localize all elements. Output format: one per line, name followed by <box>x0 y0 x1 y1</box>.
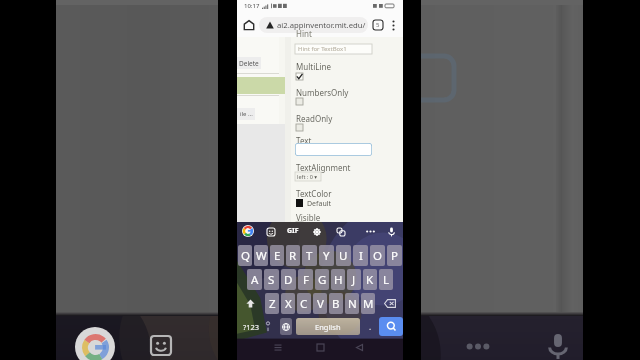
button[interactable]: Backspace <box>376 293 403 314</box>
button[interactable]: F <box>298 269 313 290</box>
staticText: left : 0 ▾ <box>297 173 318 180</box>
staticText: V <box>317 296 324 312</box>
button[interactable]: Home <box>314 341 326 353</box>
button[interactable]: D <box>281 269 296 290</box>
button[interactable]: Delete <box>237 57 261 69</box>
button[interactable]: H <box>331 269 345 290</box>
staticText: TextColor <box>296 188 332 199</box>
button[interactable]: Checkbox <box>296 124 303 131</box>
staticText: Delete <box>239 59 259 68</box>
button[interactable]: P <box>387 245 402 266</box>
staticText: Hint for TextBox1 <box>298 45 347 53</box>
button[interactable]: S <box>264 269 279 290</box>
staticText: ?123 <box>243 322 260 332</box>
staticText: T <box>306 248 313 264</box>
button[interactable]: Z <box>265 293 279 314</box>
staticText: MultiLine <box>296 61 331 72</box>
staticText: GIF <box>287 226 299 236</box>
button[interactable]: Back <box>353 341 365 353</box>
staticText: Z <box>269 296 276 312</box>
staticText: I <box>359 248 363 264</box>
staticText: M <box>363 296 374 312</box>
button[interactable]: Home <box>241 17 257 33</box>
staticText: A <box>251 272 259 288</box>
staticText: . <box>369 321 372 332</box>
staticText: P <box>391 248 398 264</box>
staticText: R <box>289 248 297 264</box>
button[interactable]: E <box>270 245 284 266</box>
button[interactable]: More options <box>386 18 400 32</box>
button[interactable]: Stickers <box>265 226 276 237</box>
button[interactable]: B <box>329 293 343 314</box>
staticText: S <box>268 272 275 288</box>
staticText: W <box>256 248 267 264</box>
button[interactable]: Google <box>242 225 254 237</box>
staticText: Text <box>296 135 312 146</box>
button[interactable]: X <box>281 293 295 314</box>
button[interactable]: Checkbox <box>296 73 303 80</box>
staticText: F <box>303 272 309 288</box>
button[interactable]: K <box>363 269 377 290</box>
staticText: TextAlignment <box>296 162 351 173</box>
button[interactable]: Y <box>319 245 334 266</box>
button[interactable]: left : 0 ▾ <box>295 172 321 181</box>
staticText: ile ... <box>240 110 253 118</box>
staticText: ai2.appinventor.mit.edu/ <box>277 20 366 30</box>
staticText: G <box>318 272 327 288</box>
button[interactable]: Tabs <box>371 18 385 32</box>
staticText: C <box>300 296 308 312</box>
button[interactable]: Settings <box>311 226 322 237</box>
button[interactable]: Q <box>238 245 252 266</box>
button[interactable]: J <box>347 269 361 290</box>
staticText: E <box>274 248 281 264</box>
button[interactable]: Recents <box>272 341 284 353</box>
button[interactable]: T <box>302 245 317 266</box>
button[interactable]: L <box>379 269 393 290</box>
staticText: NumbersOnly <box>296 87 349 98</box>
staticText: Default <box>307 199 332 209</box>
staticText: U <box>339 248 348 264</box>
button[interactable]: C <box>297 293 311 314</box>
button[interactable]: W <box>254 245 268 266</box>
button[interactable]: U <box>336 245 351 266</box>
staticText: 10:17 <box>244 2 260 10</box>
staticText: D <box>284 272 293 288</box>
button[interactable]: GIF <box>286 225 300 237</box>
button[interactable]: Shift <box>237 293 264 314</box>
button[interactable]: I <box>353 245 368 266</box>
staticText: X <box>285 296 292 312</box>
button[interactable]: Translate <box>335 226 346 237</box>
button[interactable]: N <box>345 293 359 314</box>
button[interactable]: . <box>365 318 375 335</box>
staticText: L <box>383 272 390 288</box>
button[interactable]: Checkbox <box>296 98 303 105</box>
button[interactable]: ?123 <box>240 318 262 335</box>
button[interactable]: O <box>370 245 385 266</box>
staticText: 5 <box>376 21 380 29</box>
staticText: ReadOnly <box>296 113 333 124</box>
button[interactable]: ile ... <box>237 108 255 120</box>
button[interactable]: A <box>247 269 262 290</box>
button[interactable]: M <box>361 293 375 314</box>
staticText: B <box>332 296 340 312</box>
button[interactable]: Voice input <box>386 225 397 238</box>
staticText: H <box>334 272 343 288</box>
staticText: Visible <box>296 212 321 223</box>
button[interactable]: ai2.appinventor.mit.edu/ <box>259 17 368 33</box>
button[interactable]: V <box>313 293 327 314</box>
staticText: N <box>348 296 357 312</box>
staticText: Q <box>241 248 250 264</box>
button[interactable]: More <box>364 226 376 237</box>
staticText: Y <box>323 248 330 264</box>
button[interactable]: Search <box>379 317 403 336</box>
staticText: O <box>373 248 382 264</box>
button[interactable]: Hint for TextBox1 <box>295 44 372 54</box>
button[interactable]: Checkbox <box>296 222 303 229</box>
button[interactable]: R <box>286 245 300 266</box>
button[interactable]: English <box>296 318 360 335</box>
button[interactable]: Change language <box>280 318 292 335</box>
button[interactable]: G <box>315 269 329 290</box>
staticText: K <box>366 272 374 288</box>
staticText: Hint <box>296 28 312 39</box>
button[interactable] <box>295 143 372 156</box>
